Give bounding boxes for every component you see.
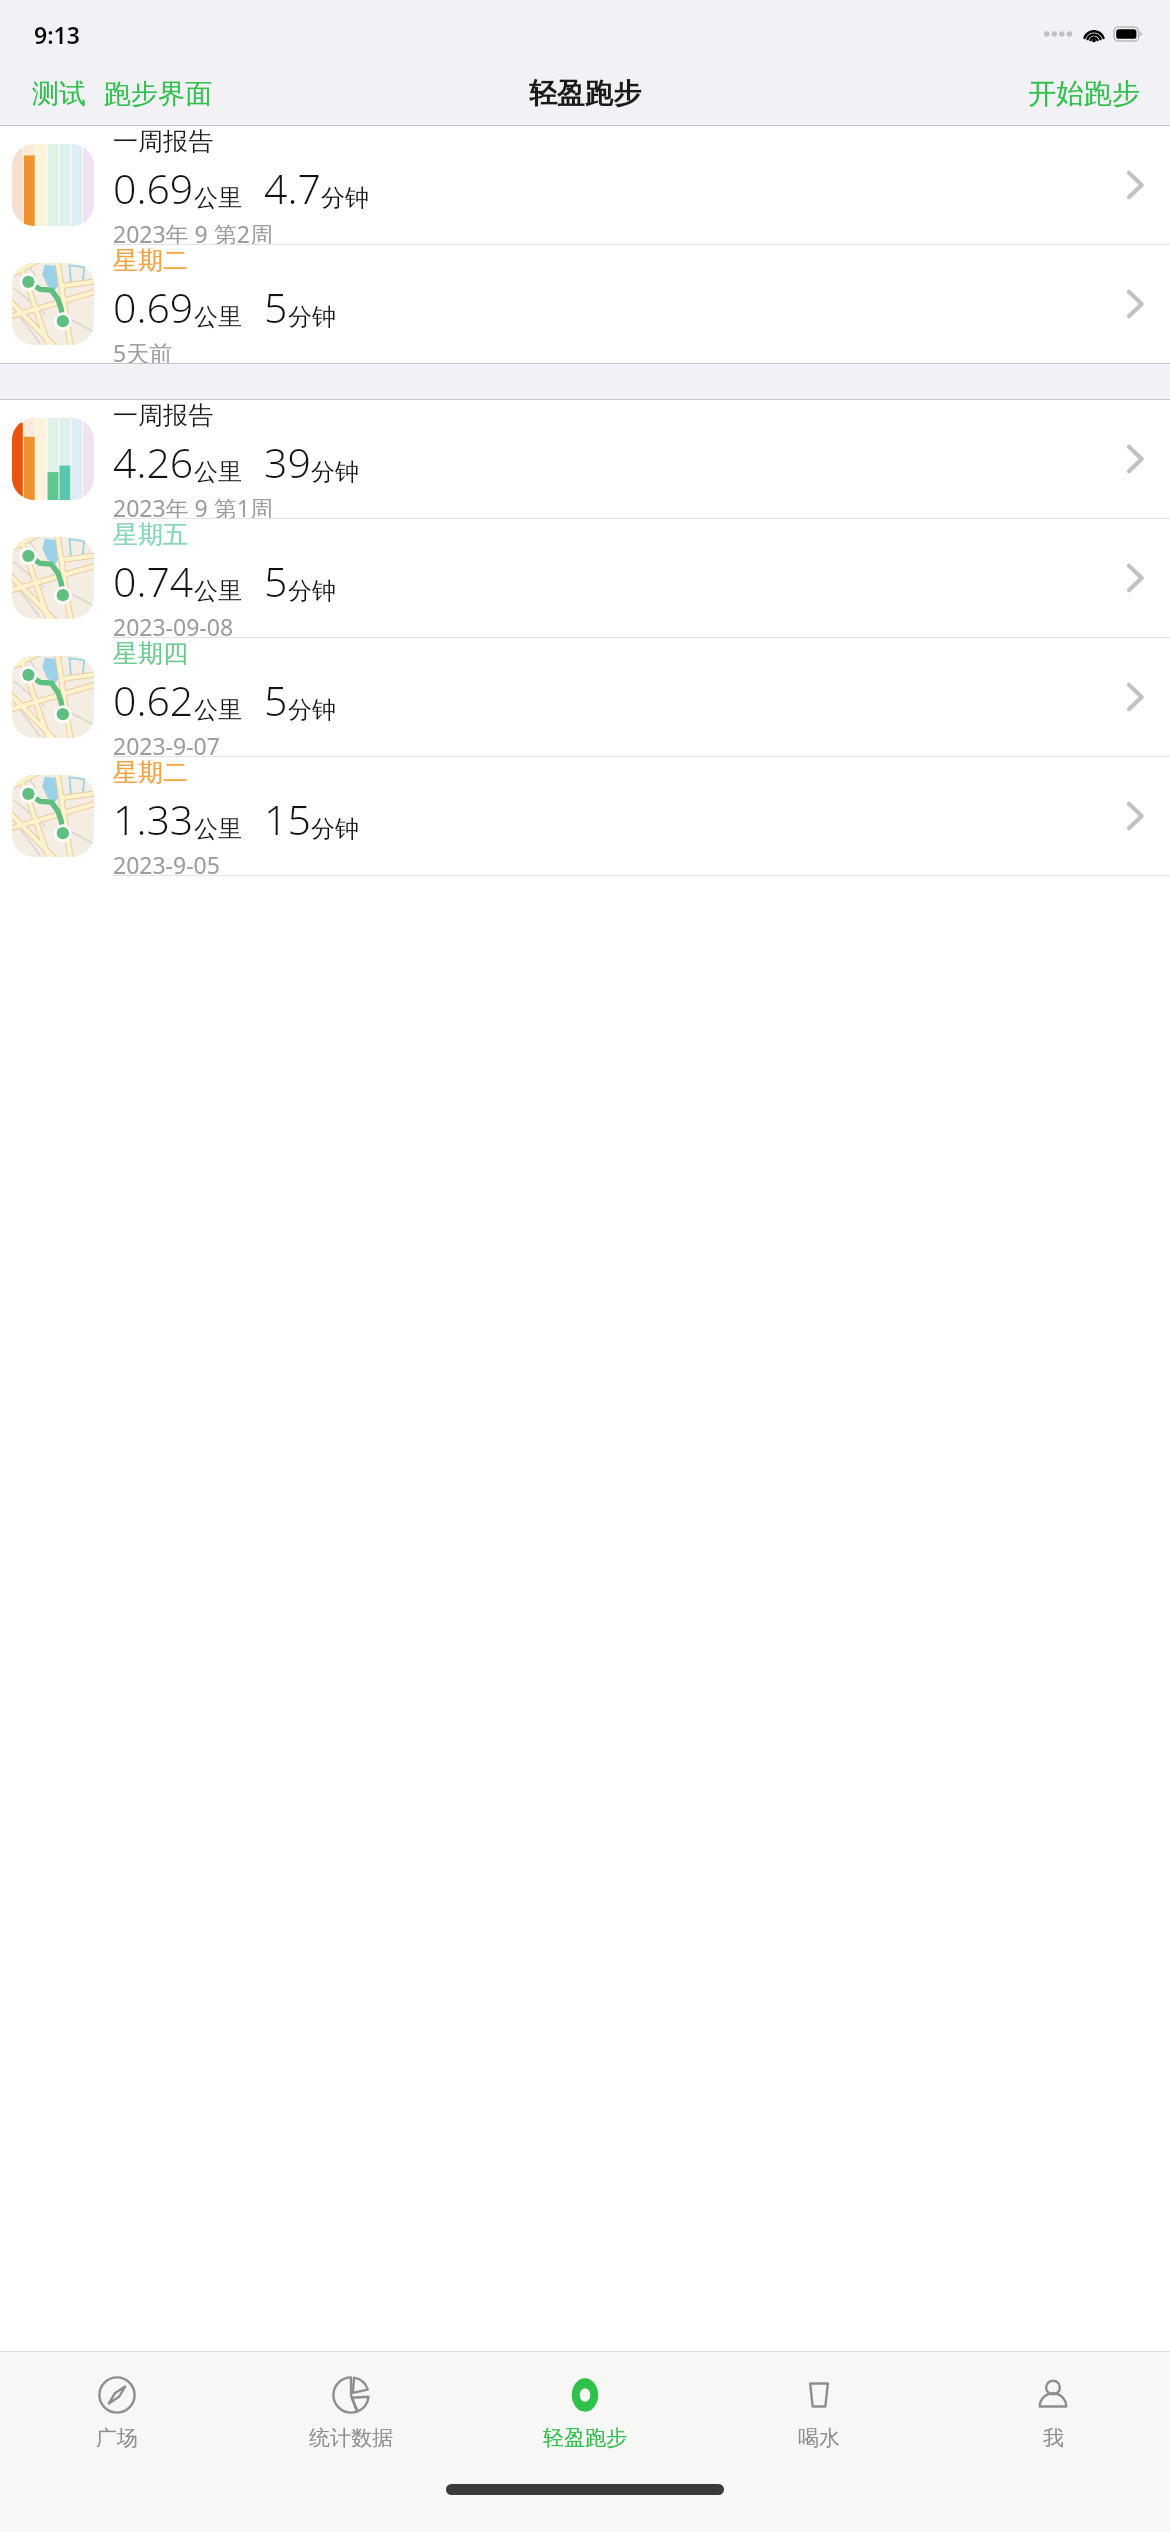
staticText: 开始跑步 (1028, 76, 1140, 111)
other: 查看详情 (1120, 170, 1150, 200)
staticText: 公里 (194, 183, 242, 213)
staticText: 2023年 9 第2周 (113, 218, 273, 244)
staticText: 喝水 (798, 2425, 840, 2451)
staticText: 2023-9-07 (113, 730, 220, 756)
staticText: 5 (264, 553, 288, 609)
staticText: 分钟 (288, 695, 336, 725)
staticText: 0.69 (113, 279, 194, 335)
staticText: 公里 (194, 695, 242, 725)
other: 查看详情 (1120, 563, 1150, 593)
other: 查看详情 (1120, 289, 1150, 319)
button[interactable]: 开始跑步 (1026, 70, 1142, 117)
staticText: 分钟 (288, 576, 336, 606)
staticText: 0.69 (113, 160, 194, 216)
staticText: 跑步界面 (104, 77, 212, 111)
staticText: 0.74 (113, 553, 194, 609)
staticText: 轻盈跑步 (543, 2425, 627, 2451)
staticText: 统计数据 (309, 2425, 393, 2451)
staticText: 星期二 (113, 757, 188, 788)
staticText: 星期四 (113, 638, 188, 669)
staticText: 我 (1043, 2425, 1064, 2451)
staticText: 分钟 (311, 457, 359, 487)
staticText: 星期二 (113, 245, 188, 276)
staticText: 公里 (194, 814, 242, 844)
staticText: 公里 (194, 302, 242, 332)
staticText: 一周报告 (113, 126, 213, 157)
staticText: 星期五 (113, 519, 188, 550)
other: 查看详情 (1120, 444, 1150, 474)
staticText: 15 (264, 791, 311, 847)
other: 查看详情 (1120, 801, 1150, 831)
staticText: 39 (264, 434, 311, 490)
other: 查看详情 (1120, 682, 1150, 712)
button[interactable]: 星期五 (0, 519, 1170, 638)
staticText: 2023-9-05 (113, 849, 220, 875)
staticText: 测试 (32, 77, 86, 111)
staticText: 5 (264, 672, 288, 728)
button[interactable]: 轻盈跑步 (468, 2352, 702, 2472)
staticText: 2023年 9 第1周 (113, 492, 273, 518)
button[interactable]: 统计数据 (234, 2352, 468, 2472)
staticText: 5天前 (113, 337, 173, 363)
button[interactable]: 一周报告 (0, 126, 1170, 245)
button[interactable]: 跑步界面 (102, 71, 214, 117)
staticText: 2023-09-08 (113, 611, 234, 637)
staticText: 分钟 (321, 183, 369, 213)
button[interactable]: 测试 (30, 71, 88, 117)
staticText: 广场 (96, 2425, 138, 2451)
button[interactable]: 广场 (0, 2352, 234, 2472)
button[interactable]: 一周报告 (0, 400, 1170, 519)
button[interactable]: 星期二 (0, 757, 1170, 876)
button[interactable]: 星期二 (0, 245, 1170, 363)
button[interactable]: 喝水 (702, 2352, 936, 2472)
button[interactable]: 星期四 (0, 638, 1170, 757)
staticText: 5 (264, 279, 288, 335)
button[interactable]: 我 (936, 2352, 1170, 2472)
staticText: 轻盈跑步 (529, 76, 641, 111)
staticText: 一周报告 (113, 400, 213, 431)
staticText: 分钟 (311, 814, 359, 844)
staticText: 1.33 (113, 791, 194, 847)
staticText: 分钟 (288, 302, 336, 332)
staticText: 9:13 (34, 19, 80, 50)
staticText: 4.7 (264, 160, 321, 216)
staticText: 4.26 (113, 434, 194, 490)
staticText: 公里 (194, 457, 242, 487)
staticText: 0.62 (113, 672, 194, 728)
staticText: 公里 (194, 576, 242, 606)
